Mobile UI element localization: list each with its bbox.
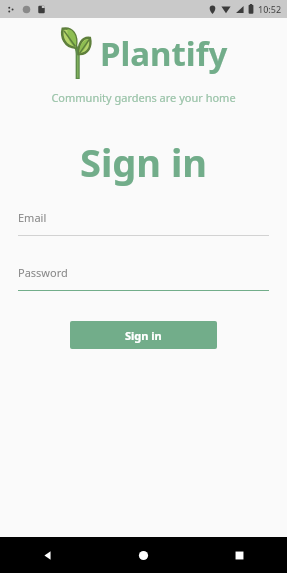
staticText: Password: [18, 265, 68, 280]
button[interactable]: Home: [95, 537, 191, 573]
staticText: Sign in: [125, 328, 162, 343]
button[interactable]: Password: [0, 265, 287, 291]
staticText: Sign in: [0, 136, 287, 188]
staticText: 10:52: [258, 3, 282, 15]
button[interactable]: Back: [0, 537, 95, 573]
button[interactable]: Sign in: [70, 321, 217, 349]
staticText: Plantify: [100, 31, 228, 76]
staticText: Community gardens are your home: [0, 90, 287, 105]
button[interactable]: Email: [0, 210, 287, 236]
button[interactable]: Recent apps: [191, 537, 287, 573]
staticText: Email: [18, 210, 47, 225]
